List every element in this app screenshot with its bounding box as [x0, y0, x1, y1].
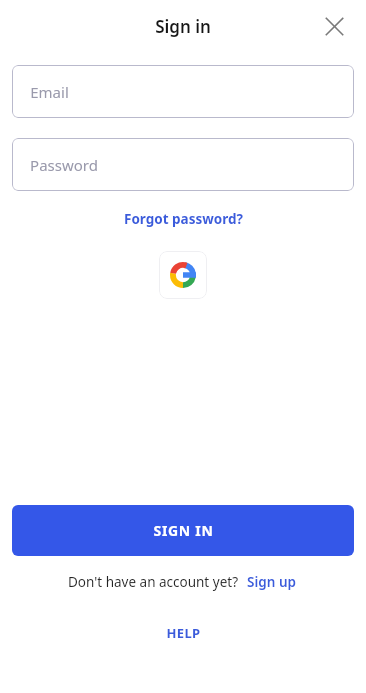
- button[interactable]: SIGN IN: [12, 505, 354, 556]
- button[interactable]: HELP: [154, 619, 213, 647]
- staticText: Password: [30, 155, 98, 175]
- staticText: Email: [30, 82, 69, 102]
- staticText: Don't have an account yet?: [68, 573, 238, 591]
- staticText: Forgot password?: [124, 210, 243, 228]
- button[interactable]: Close: [316, 8, 352, 44]
- staticText: SIGN IN: [153, 521, 214, 540]
- staticText: Sign in: [155, 15, 211, 38]
- button[interactable]: Sign up: [245, 571, 298, 593]
- staticText: HELP: [166, 624, 201, 642]
- staticText: Sign up: [247, 573, 296, 591]
- button[interactable]: Forgot password?: [118, 207, 249, 231]
- button[interactable]: Email: [12, 65, 354, 118]
- button[interactable]: Password: [12, 138, 354, 191]
- button[interactable]: Sign in with Google: [159, 251, 207, 299]
